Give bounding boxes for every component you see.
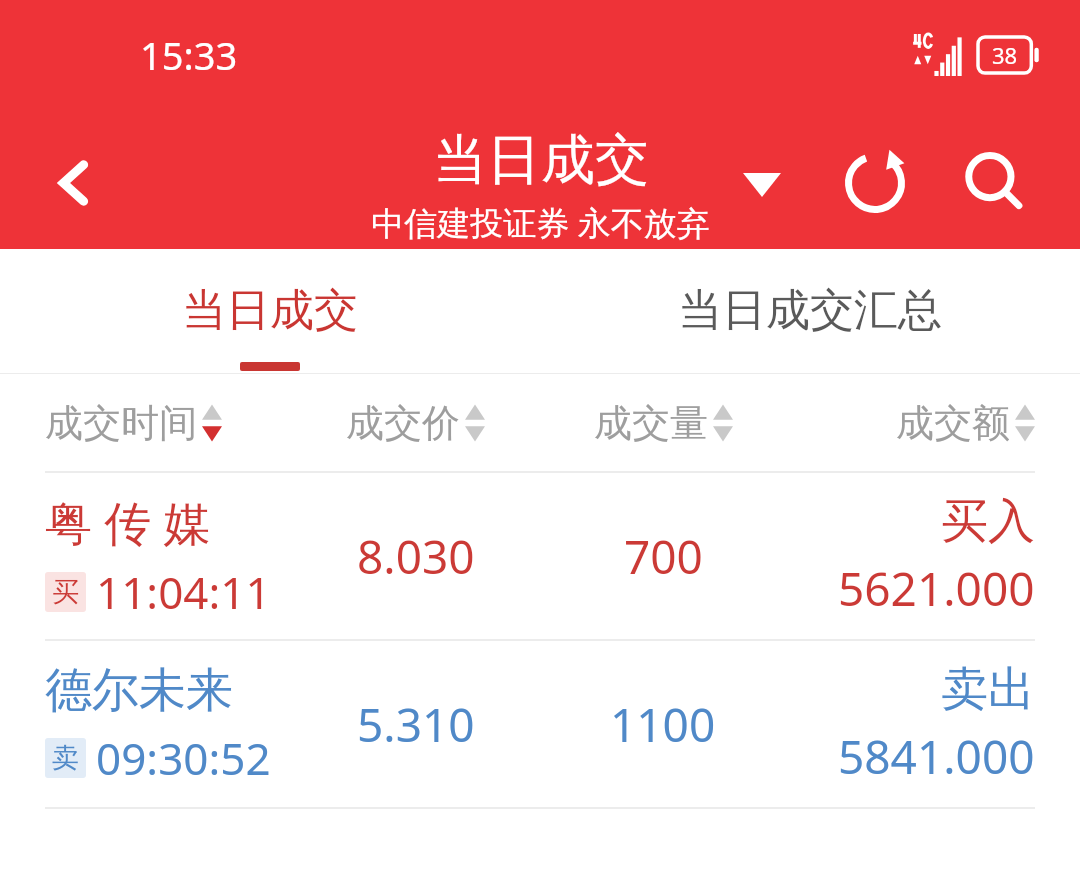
button[interactable]: 成交额 (787, 374, 1035, 471)
staticText: 买入 (941, 492, 1035, 551)
staticText: 5621.000 (838, 557, 1035, 620)
staticText: 5.310 (357, 693, 475, 756)
staticText: 成交量 (594, 399, 708, 447)
staticText: 15:33 (140, 29, 238, 81)
staticText: 当日成交汇总 (678, 283, 942, 338)
staticText: 德尔未来 (45, 661, 233, 720)
button[interactable]: 成交价 (292, 374, 539, 471)
button[interactable]: Refresh (820, 128, 930, 238)
button[interactable]: 粤 传 媒 (0, 473, 1080, 639)
button[interactable]: 成交量 (539, 374, 787, 471)
button[interactable]: 当日成交 (0, 249, 540, 373)
staticText: 11:04:11 (96, 562, 271, 622)
staticText: 5841.000 (838, 725, 1035, 788)
staticText: 卖 (52, 741, 79, 775)
button[interactable]: Dropdown (712, 140, 812, 230)
staticText: 当日成交 (433, 126, 649, 194)
button[interactable]: 当日成交 (371, 126, 710, 245)
button[interactable]: 成交时间 (45, 374, 292, 471)
staticText: 卖出 (941, 660, 1035, 719)
staticText: 成交价 (346, 399, 460, 447)
button[interactable]: Back (20, 128, 130, 238)
button[interactable]: Search (940, 128, 1050, 238)
staticText: 38 (992, 40, 1018, 70)
staticText: 粤 传 媒 (45, 490, 211, 554)
staticText: 当日成交 (182, 283, 358, 338)
staticText: 成交时间 (45, 399, 197, 447)
staticText: 09:30:52 (96, 728, 271, 788)
button[interactable]: 德尔未来 (0, 641, 1080, 807)
staticText: 成交额 (896, 399, 1010, 447)
staticText: 中信建投证券 永不放弃 (371, 200, 710, 245)
staticText: 买 (52, 575, 79, 609)
staticText: 8.030 (357, 525, 475, 588)
button[interactable]: 当日成交汇总 (540, 249, 1080, 373)
staticText: 700 (624, 525, 703, 588)
staticText: 1100 (610, 693, 716, 756)
